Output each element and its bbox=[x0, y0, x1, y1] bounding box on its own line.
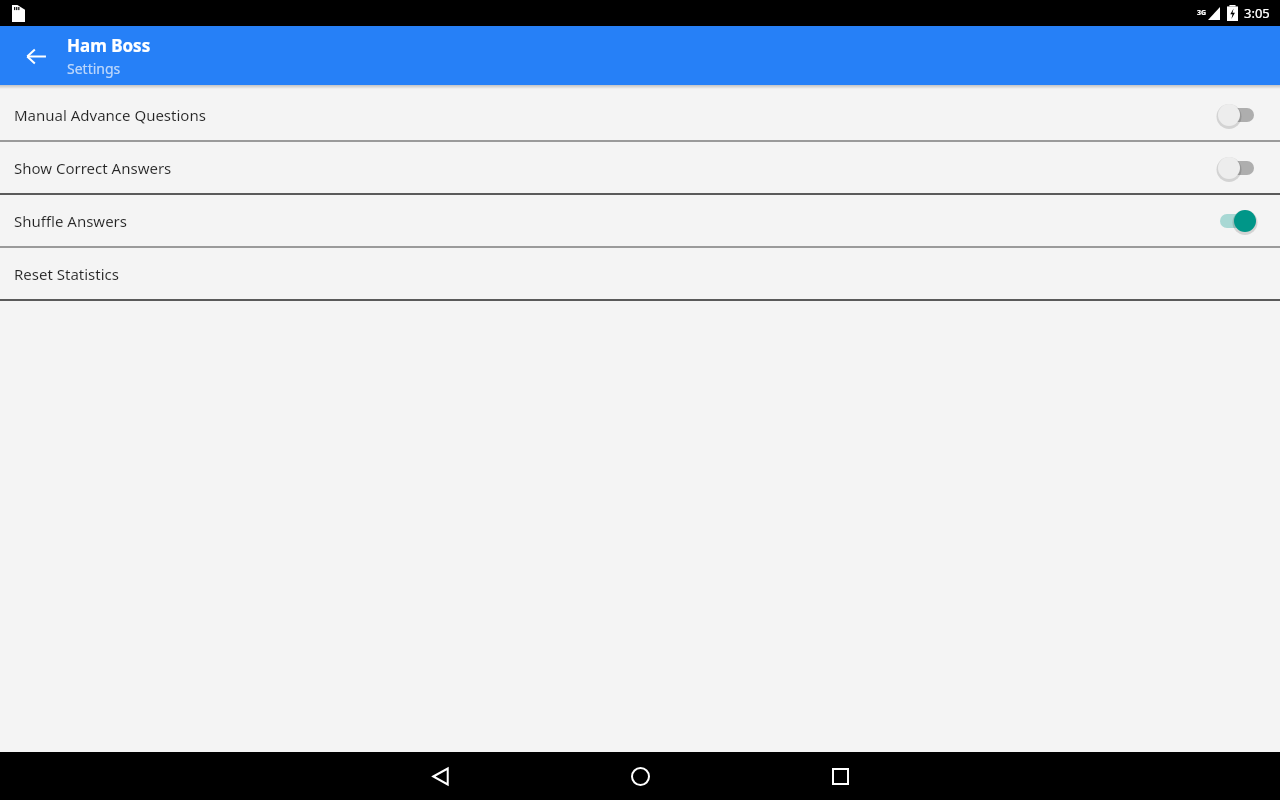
staticText: 3G bbox=[1197, 8, 1207, 18]
staticText: Shuffle Answers bbox=[14, 211, 127, 231]
button[interactable]: Home bbox=[540, 752, 740, 800]
button[interactable]: Shuffle Answers bbox=[0, 195, 1280, 246]
button[interactable]: Recent apps bbox=[740, 752, 940, 800]
staticText: Settings bbox=[67, 59, 121, 78]
button[interactable]: Reset Statistics bbox=[0, 248, 1280, 299]
staticText: Reset Statistics bbox=[14, 264, 119, 284]
button[interactable]: Navigate up bbox=[14, 34, 58, 78]
staticText: Ham Boss bbox=[67, 34, 151, 57]
button[interactable]: Off bbox=[1214, 98, 1260, 132]
staticText: Show Correct Answers bbox=[14, 158, 172, 178]
button[interactable]: On bbox=[1214, 204, 1260, 238]
button[interactable]: Manual Advance Questions bbox=[0, 89, 1280, 140]
button[interactable]: Off bbox=[1214, 151, 1260, 185]
button[interactable]: Back bbox=[340, 752, 540, 800]
staticText: 3:05 bbox=[1244, 4, 1270, 22]
button[interactable]: Show Correct Answers bbox=[0, 142, 1280, 193]
staticText: Manual Advance Questions bbox=[14, 105, 206, 125]
